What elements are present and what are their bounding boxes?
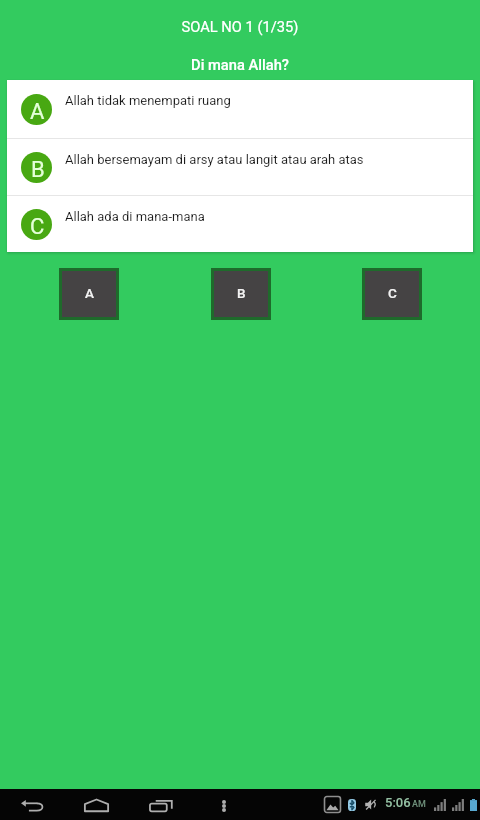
staticText: A (85, 285, 94, 301)
button[interactable]: C (362, 268, 422, 320)
staticText: Allah ada di mana-mana (65, 209, 205, 224)
staticText: B (237, 285, 246, 301)
staticText: AM (412, 799, 426, 810)
button[interactable]: B (211, 268, 271, 320)
button[interactable]: B (7, 139, 473, 195)
staticText: C (388, 285, 397, 301)
button[interactable]: C (7, 196, 473, 252)
staticText: B (31, 157, 45, 183)
staticText: A (30, 99, 45, 125)
button[interactable]: A (59, 268, 119, 320)
staticText: Allah bersemayam di arsy atau langit ata… (65, 152, 364, 167)
button[interactable]: More options (208, 790, 240, 820)
button[interactable]: Back (11, 790, 53, 820)
staticText: 5:06 (385, 795, 411, 810)
staticText: C (30, 214, 45, 240)
button[interactable]: Home (76, 790, 117, 820)
staticText: SOAL NO 1 (1/35) (0, 18, 480, 35)
staticText: Allah tidak menempati ruang (65, 93, 231, 108)
button[interactable]: A (7, 80, 473, 138)
staticText: Di mana Allah? (0, 56, 480, 73)
button[interactable]: Recent apps (140, 790, 181, 820)
